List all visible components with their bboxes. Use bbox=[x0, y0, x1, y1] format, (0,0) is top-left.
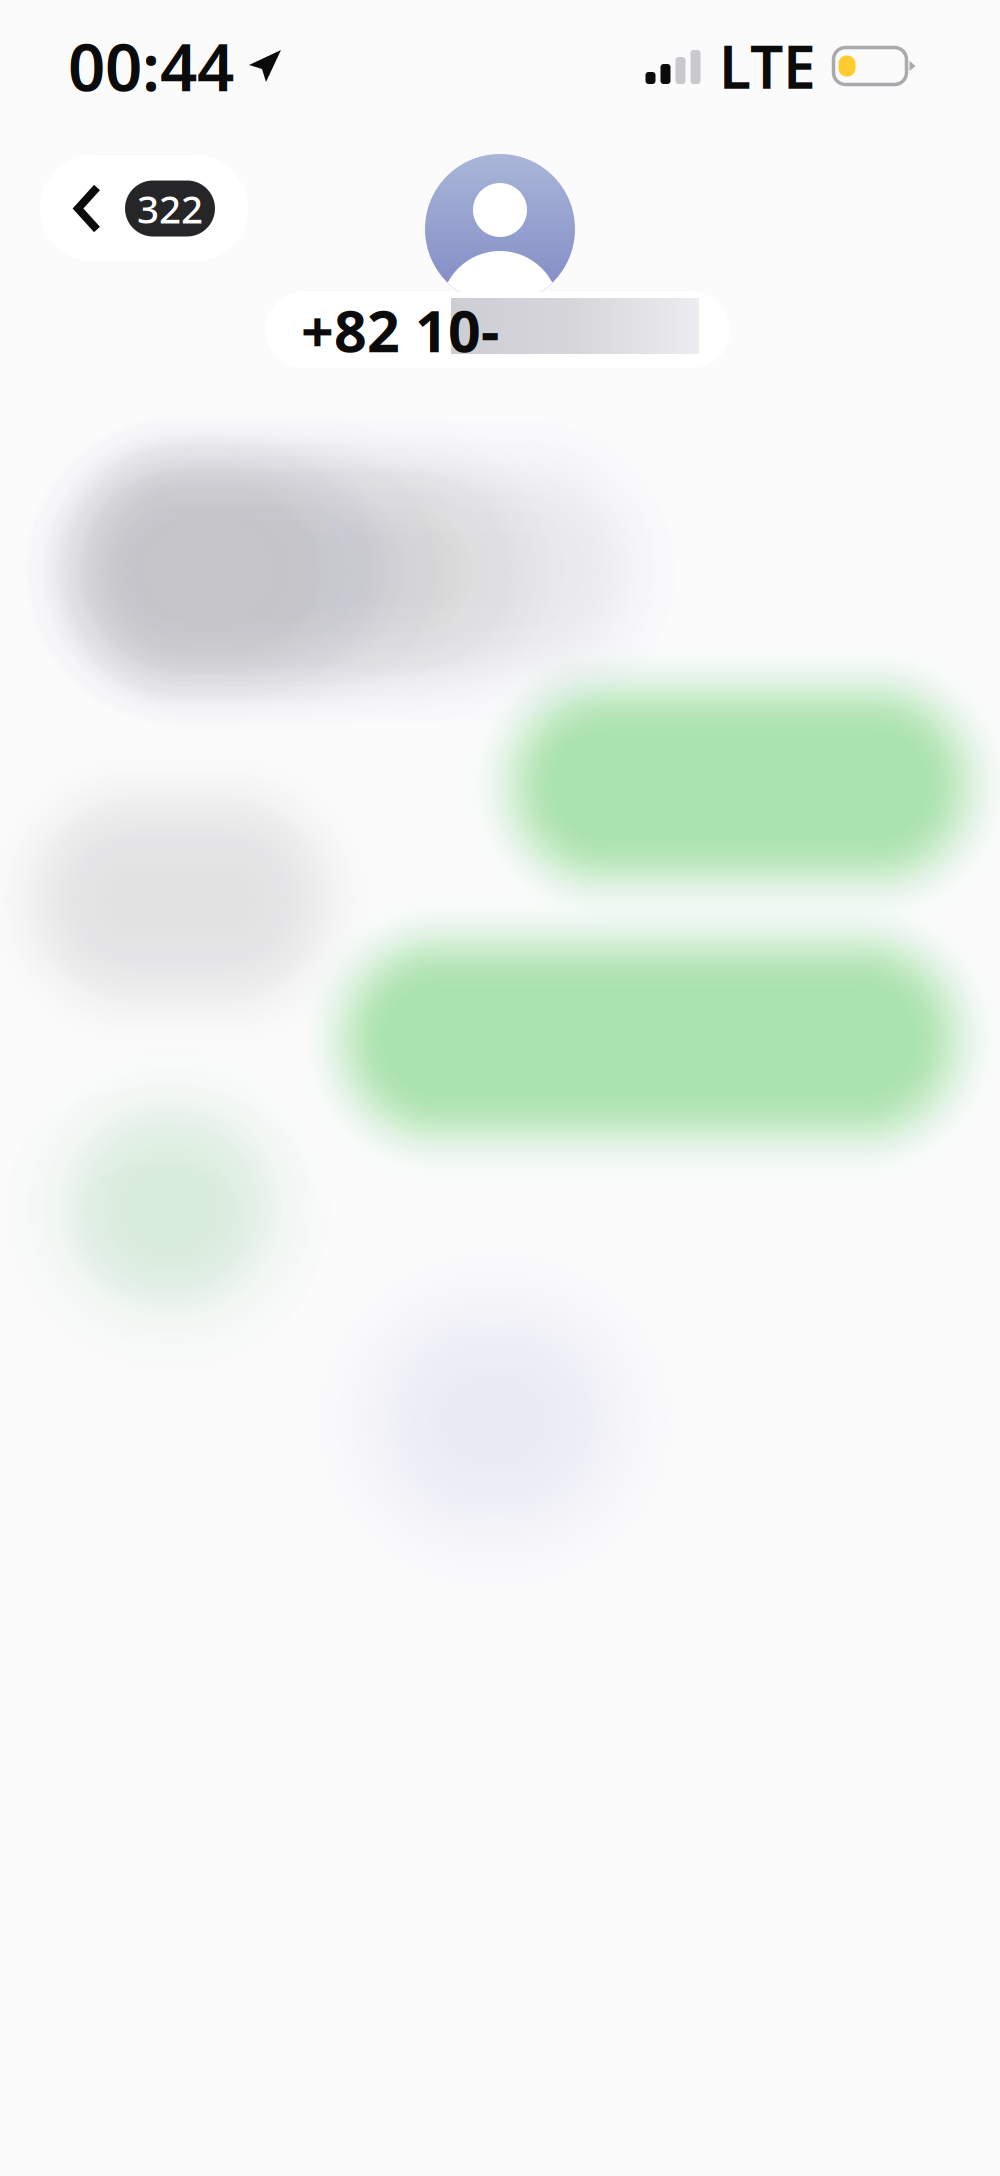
staticText: +82 10- bbox=[301, 292, 499, 368]
staticText: 322 bbox=[137, 183, 203, 234]
staticText: 00:44 bbox=[68, 23, 234, 109]
button[interactable]: Back bbox=[40, 156, 248, 261]
staticText: LTE bbox=[719, 27, 816, 105]
